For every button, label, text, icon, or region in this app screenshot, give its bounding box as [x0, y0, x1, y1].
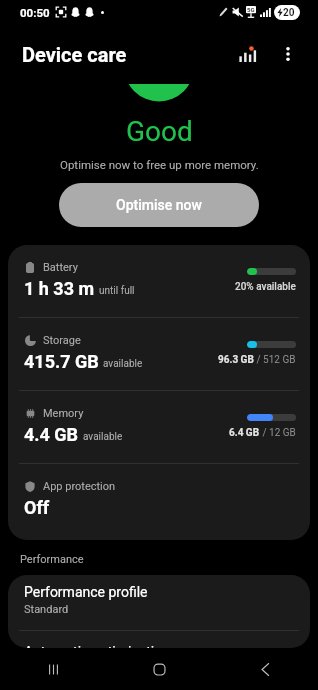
staticText: until full	[99, 285, 135, 297]
button[interactable]: Battery	[8, 245, 310, 317]
staticText: 4.4 GB	[24, 424, 79, 445]
staticText: Good	[126, 115, 193, 148]
staticText: 6.4 GB	[229, 427, 260, 439]
staticText: App protection	[43, 480, 116, 493]
staticText: Performance	[20, 553, 84, 566]
staticText: Automatic optimisation	[24, 644, 170, 648]
button[interactable]: App protection	[8, 464, 310, 540]
staticText: available	[83, 431, 123, 443]
staticText: Off	[24, 497, 50, 518]
staticText: 5G	[247, 6, 255, 13]
staticText: Battery	[43, 261, 78, 274]
staticText: Storage	[43, 334, 81, 347]
staticText: 20	[283, 7, 295, 19]
button[interactable]: Back	[241, 648, 289, 690]
button[interactable]: Recent apps	[29, 648, 77, 690]
staticText: available	[103, 358, 143, 370]
staticText: Optimise now to free up more memory.	[60, 158, 259, 171]
staticText: / 512 GB	[254, 354, 296, 366]
button[interactable]: Optimise now	[59, 183, 259, 227]
staticText: Memory	[43, 407, 84, 420]
staticText: Optimise now	[116, 197, 202, 213]
staticText: 1 h 33 m	[24, 278, 95, 299]
staticText: 96.3 GB	[218, 354, 254, 366]
staticText: / 12 GB	[260, 427, 296, 439]
staticText: Device care	[22, 43, 127, 66]
button[interactable]: Performance profile	[8, 575, 310, 630]
button[interactable]: Home	[135, 648, 183, 690]
button[interactable]: Automatic optimisation	[8, 640, 310, 648]
staticText: Standard	[24, 603, 69, 616]
staticText: Performance profile	[24, 584, 148, 600]
button[interactable]: Usage statistics	[225, 33, 267, 75]
button[interactable]: More options	[267, 33, 309, 75]
staticText: 20% available	[235, 281, 296, 293]
button[interactable]: Memory	[8, 391, 310, 463]
staticText: 00:50	[20, 6, 50, 19]
button[interactable]: Storage	[8, 318, 310, 390]
staticText: 415.7 GB	[24, 351, 99, 372]
